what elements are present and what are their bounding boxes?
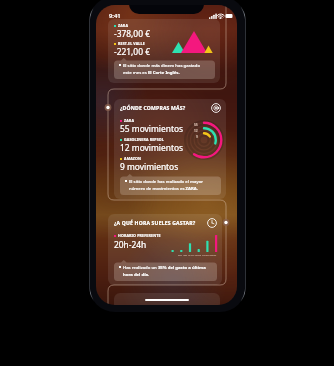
staticText: 12 movimientos xyxy=(120,142,184,153)
staticText: HORARIO PREFERENTE xyxy=(118,233,161,238)
staticText: Has realizado un 35% del gasto a última … xyxy=(123,264,206,277)
staticText: 20h-24h xyxy=(114,239,147,250)
staticText: 55 movimientos xyxy=(120,123,184,134)
staticText: El sitio donde más dinero has gastado es… xyxy=(123,62,201,75)
staticText: ZARA xyxy=(124,118,135,123)
staticText: El sitio donde has realizado el mayor nú… xyxy=(129,178,204,191)
other: Estado xyxy=(209,13,233,19)
button[interactable]: ZARA xyxy=(108,19,220,83)
staticText: -221,00 € xyxy=(114,46,150,57)
staticText: 9 movimientos xyxy=(120,161,179,172)
button[interactable]: ¿A QUÉ HORA SUELES GASTAR? xyxy=(108,214,222,285)
staticText: AMAZON xyxy=(124,156,142,161)
staticText: 9 xyxy=(196,135,198,139)
staticText: 0-4 4-8 8-12 12-16 16-20 20-24 xyxy=(178,253,217,256)
other: Ver horario xyxy=(207,218,217,228)
staticText: REST.EL VALLE xyxy=(118,41,145,46)
staticText: ZARA xyxy=(118,23,129,28)
staticText: 55 xyxy=(194,123,198,127)
staticText: ¿DÓNDE COMPRAS MÁS? xyxy=(120,105,186,112)
staticText: GASOLINERA REPSOL xyxy=(124,137,165,142)
staticText: -378,00 € xyxy=(114,28,150,39)
staticText: 9:41 xyxy=(109,12,121,20)
staticText: ¿A QUÉ HORA SUELES GASTAR? xyxy=(114,220,196,227)
staticText: 12 xyxy=(194,129,198,133)
button[interactable]: ¿DÓNDE COMPRAS MÁS? xyxy=(114,99,226,199)
button[interactable] xyxy=(114,293,220,305)
other: Ver detalle xyxy=(211,103,221,113)
